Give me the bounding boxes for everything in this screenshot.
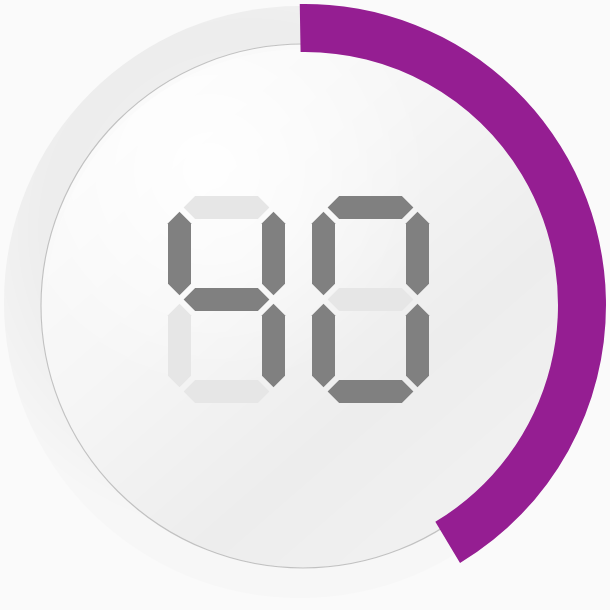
button[interactable]: Countdown timer 40 seconds remaining: [0, 0, 610, 610]
